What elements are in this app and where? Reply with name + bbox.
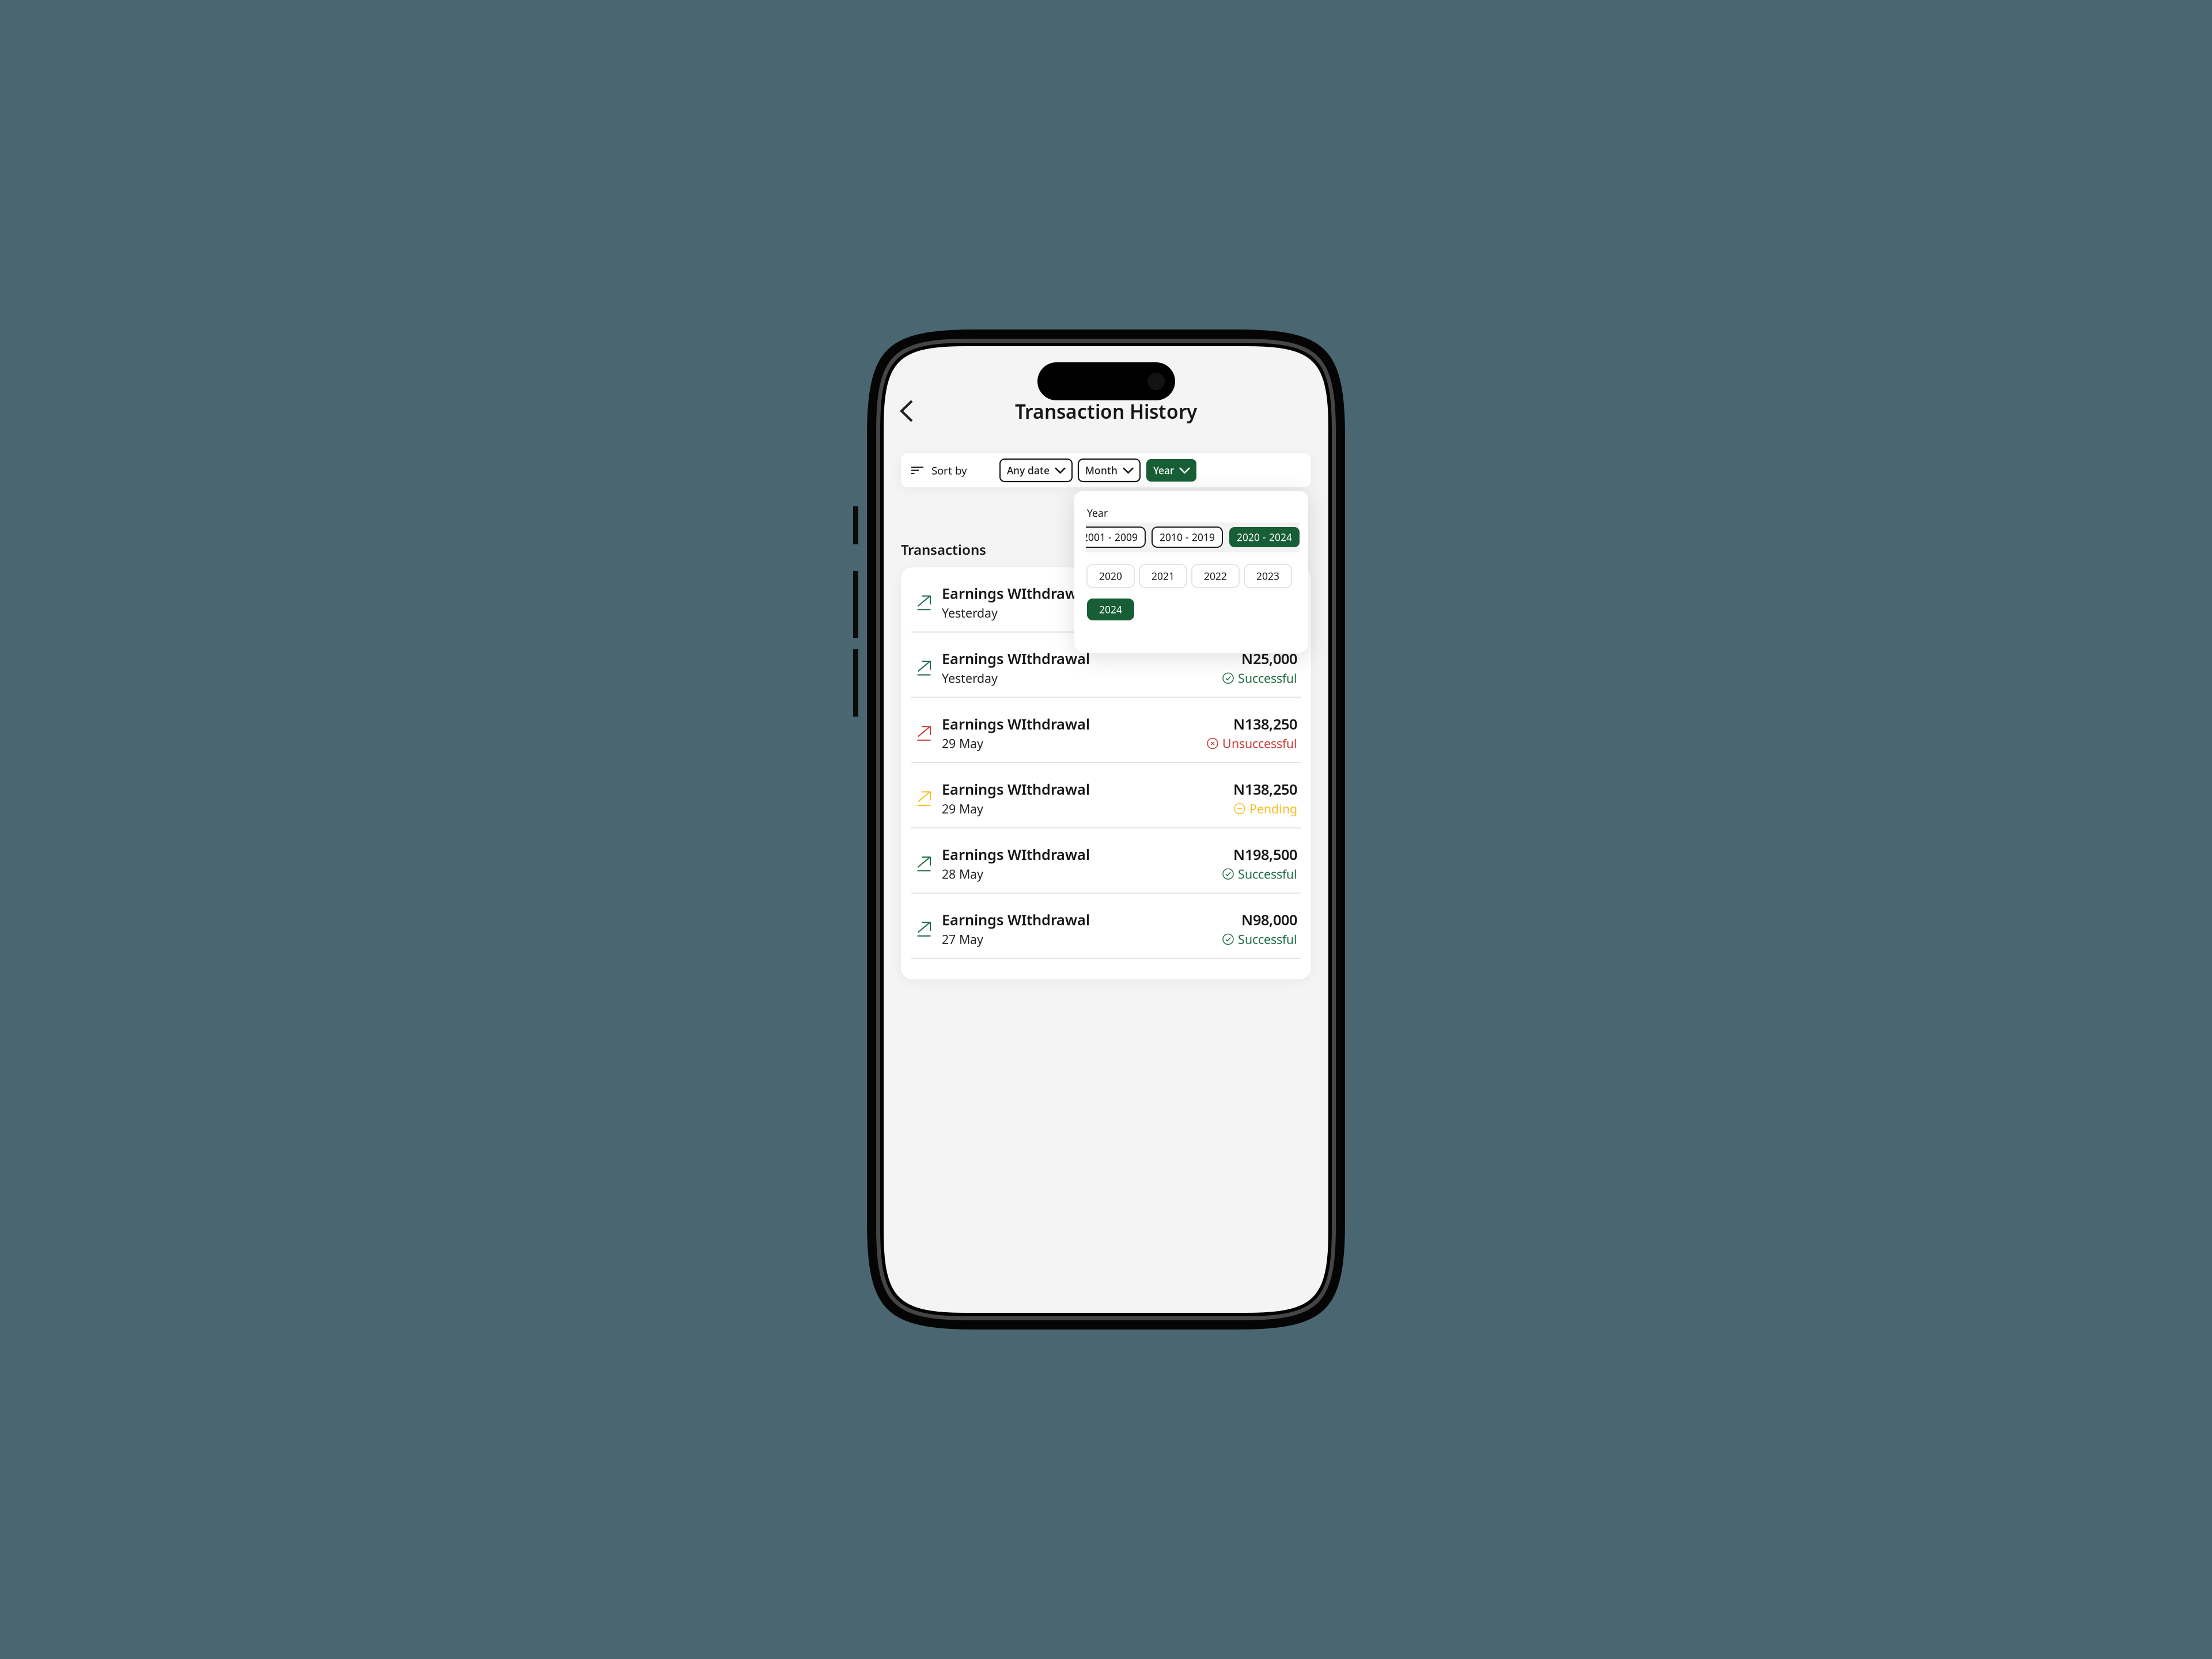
staticText: N198,500 bbox=[1233, 845, 1297, 864]
staticText: 2023 bbox=[1256, 569, 1279, 583]
staticText: Year bbox=[1087, 506, 1108, 520]
button[interactable]: Month bbox=[1078, 459, 1140, 482]
button[interactable]: 2023 bbox=[1244, 565, 1291, 588]
staticText: 28 May bbox=[942, 866, 983, 882]
staticText: 27 May bbox=[942, 931, 983, 947]
button[interactable]: Earnings WIthdrawal bbox=[901, 828, 1311, 893]
staticText: Year bbox=[1153, 464, 1174, 477]
button[interactable]: 2022 bbox=[1192, 565, 1239, 588]
staticText: Pending bbox=[1249, 801, 1297, 817]
button[interactable]: 2021 bbox=[1139, 565, 1187, 588]
staticText: 29 May bbox=[942, 801, 983, 817]
button[interactable]: Earnings WIthdrawal bbox=[901, 567, 1311, 632]
staticText: Successful bbox=[1238, 670, 1297, 686]
button[interactable]: 2020 - 2024 bbox=[1229, 527, 1300, 547]
staticText: Earnings WIthdrawal bbox=[942, 910, 1090, 929]
staticText: N25,000 bbox=[1241, 649, 1297, 668]
staticText: 2010 - 2019 bbox=[1160, 531, 1215, 544]
button[interactable]: Back bbox=[893, 393, 920, 429]
staticText: N98,000 bbox=[1241, 910, 1297, 929]
staticText: Earnings WIthdrawal bbox=[942, 845, 1090, 864]
staticText: Transaction History bbox=[1015, 399, 1197, 424]
staticText: N25,000 bbox=[1241, 584, 1297, 603]
staticText: Earnings WIthdrawal bbox=[942, 649, 1090, 668]
staticText: Earnings WIthdrawal bbox=[942, 714, 1090, 734]
staticText: 2020 bbox=[1099, 569, 1122, 583]
button[interactable]: 2010 - 2019 bbox=[1152, 527, 1222, 547]
button[interactable]: Earnings WIthdrawal bbox=[901, 763, 1311, 827]
staticText: Earnings WIthdrawal bbox=[942, 584, 1090, 603]
button[interactable]: 2001 - 2009 bbox=[1075, 527, 1145, 547]
staticText: Successful bbox=[1238, 866, 1297, 882]
button[interactable]: Earnings WIthdrawal bbox=[901, 698, 1311, 762]
staticText: Successful bbox=[1238, 931, 1297, 947]
staticText: Earnings WIthdrawal bbox=[942, 779, 1090, 799]
staticText: N138,250 bbox=[1233, 779, 1297, 799]
staticText: Yesterday bbox=[942, 605, 998, 621]
button[interactable]: Year bbox=[1146, 459, 1196, 482]
staticText: 2024 bbox=[1099, 603, 1122, 616]
staticText: Sort by bbox=[931, 463, 967, 477]
button[interactable]: Earnings WIthdrawal bbox=[901, 633, 1311, 697]
button[interactable]: 2024 bbox=[1087, 599, 1134, 620]
staticText: Month bbox=[1085, 464, 1118, 477]
staticText: Yesterday bbox=[942, 670, 998, 686]
staticText: Unsuccessful bbox=[1222, 735, 1297, 752]
staticText: 2021 bbox=[1152, 569, 1175, 583]
staticText: 2001 - 2009 bbox=[1082, 531, 1138, 544]
button[interactable]: Earnings WIthdrawal bbox=[901, 894, 1311, 958]
staticText: Any date bbox=[1007, 464, 1050, 477]
staticText: 29 May bbox=[942, 735, 983, 752]
staticText: N138,250 bbox=[1233, 714, 1297, 734]
button[interactable]: 2020 bbox=[1087, 565, 1134, 588]
button[interactable]: Any date bbox=[1000, 459, 1072, 482]
staticText: 2022 bbox=[1204, 569, 1227, 583]
staticText: 2020 - 2024 bbox=[1237, 531, 1292, 544]
staticText: Transactions bbox=[901, 540, 986, 559]
